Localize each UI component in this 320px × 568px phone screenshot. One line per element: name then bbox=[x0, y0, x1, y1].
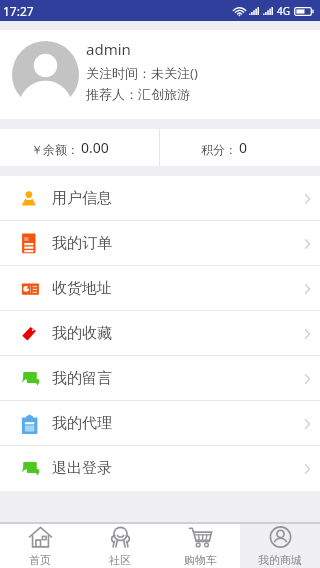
staticText: 0.00 bbox=[81, 138, 109, 157]
staticText: 退出登录 bbox=[52, 459, 112, 478]
button[interactable]: 我的留言 bbox=[0, 356, 320, 401]
staticText: 4G bbox=[277, 4, 290, 18]
staticText: 我的收藏 bbox=[52, 324, 112, 343]
button[interactable]: 我的收藏 bbox=[0, 311, 320, 356]
staticText: 积分： bbox=[201, 142, 237, 157]
staticText: 用户信息 bbox=[52, 189, 112, 208]
staticText: 购物车 bbox=[184, 553, 217, 567]
button[interactable]: 我的代理 bbox=[0, 401, 320, 446]
staticText: 我的订单 bbox=[52, 234, 112, 253]
button[interactable]: 我的商城 bbox=[240, 524, 320, 568]
button[interactable]: 退出登录 bbox=[0, 446, 320, 491]
staticText: 推荐人：汇创旅游 bbox=[86, 86, 190, 102]
button[interactable]: 收货地址 bbox=[0, 266, 320, 311]
button[interactable]: ￥余额： bbox=[0, 129, 159, 166]
staticText: 我的商城 bbox=[258, 553, 302, 567]
button[interactable]: 积分： bbox=[160, 129, 320, 166]
staticText: 17:27 bbox=[3, 3, 34, 19]
button[interactable]: 我的订单 bbox=[0, 221, 320, 266]
staticText: 关注时间：未关注() bbox=[86, 64, 198, 82]
staticText: 社区 bbox=[109, 553, 131, 567]
staticText: ￥余额： bbox=[31, 142, 79, 157]
button[interactable]: 购物车 bbox=[160, 524, 240, 568]
staticText: 我的代理 bbox=[52, 414, 112, 433]
staticText: admin bbox=[86, 39, 131, 59]
button[interactable]: admin bbox=[0, 30, 320, 119]
button[interactable]: 首页 bbox=[0, 524, 80, 568]
staticText: 0 bbox=[239, 138, 248, 157]
staticText: 我的留言 bbox=[52, 369, 112, 388]
button[interactable]: 社区 bbox=[80, 524, 160, 568]
staticText: 收货地址 bbox=[52, 279, 112, 298]
staticText: 首页 bbox=[29, 553, 51, 567]
button[interactable]: 用户信息 bbox=[0, 176, 320, 221]
